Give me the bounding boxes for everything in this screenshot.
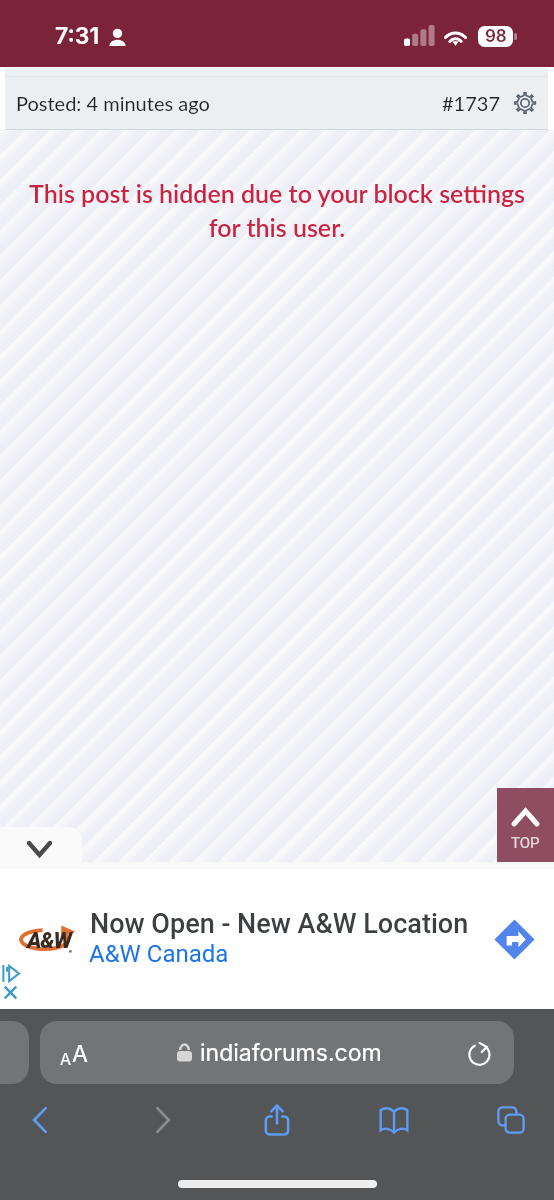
button[interactable]: Forward <box>134 1092 190 1148</box>
staticText: 98 <box>485 26 507 47</box>
button[interactable]: Post settings <box>512 90 538 116</box>
staticText: Posted: 4 minutes ago <box>16 91 210 115</box>
staticText: A <box>72 1040 88 1068</box>
button[interactable]: Share <box>249 1092 305 1148</box>
staticText: A&W <box>27 928 71 954</box>
button[interactable]: Bookmarks <box>366 1092 422 1148</box>
button[interactable]: Address bar <box>40 1021 514 1084</box>
staticText: A <box>60 1049 72 1068</box>
staticText: #1737 <box>442 91 500 115</box>
button[interactable]: Tabs <box>483 1092 539 1148</box>
staticText: TOP <box>511 834 540 852</box>
button[interactable]: Previous tab <box>0 1021 29 1084</box>
other: Directions <box>490 915 539 964</box>
button[interactable]: Scroll to top <box>497 788 554 862</box>
staticText: 7:31 <box>55 22 100 50</box>
staticText: Now Open - New A&W Location <box>90 908 469 940</box>
staticText: A&W Canada <box>89 940 229 968</box>
button[interactable]: Reload <box>463 1036 497 1070</box>
staticText: indiaforums.com <box>200 1039 382 1067</box>
button[interactable]: A&W <box>0 869 554 1009</box>
button[interactable]: Back <box>13 1092 69 1148</box>
staticText: This post is hidden due to your block se… <box>22 178 532 242</box>
button[interactable]: Collapse post <box>0 827 82 866</box>
